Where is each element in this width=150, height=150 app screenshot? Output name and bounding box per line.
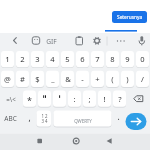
button[interactable] (102, 134, 117, 149)
staticText: * (27, 94, 32, 106)
staticText: . (117, 111, 120, 122)
staticText: 4 (50, 54, 55, 64)
button[interactable]: : (68, 91, 81, 107)
button[interactable]: 9 (121, 51, 134, 67)
button[interactable]: 0 (136, 51, 149, 67)
button[interactable] (72, 34, 85, 47)
button[interactable]: GIF (43, 35, 60, 48)
button[interactable]: 4 (46, 51, 59, 67)
staticText: + (95, 74, 100, 84)
button[interactable] (69, 134, 84, 149)
staticText: ) (126, 74, 129, 84)
staticText: $ (35, 74, 40, 84)
button[interactable] (32, 134, 47, 149)
staticText: 9 (125, 54, 130, 64)
button[interactable]: $ (31, 71, 44, 87)
button[interactable]: 3 (31, 51, 44, 67)
button[interactable]: & (61, 71, 74, 87)
button[interactable]: 1 2 3 4 (37, 110, 52, 126)
button[interactable]: # (16, 71, 29, 87)
button[interactable]: QWERTY (54, 110, 112, 126)
button[interactable]: * (23, 91, 36, 107)
button[interactable]: ) (121, 71, 134, 87)
button[interactable] (53, 91, 66, 107)
button[interactable]: 7 (91, 51, 104, 67)
button[interactable]: 6 (76, 51, 89, 67)
staticText: 0 (140, 54, 145, 64)
button[interactable]: ( (106, 71, 119, 87)
staticText: - (81, 74, 84, 84)
staticText: ABC (4, 114, 17, 123)
button[interactable] (29, 34, 42, 47)
staticText: 6 (80, 54, 85, 64)
button[interactable] (9, 34, 22, 47)
staticText: ( (111, 74, 114, 84)
staticText: / (141, 74, 144, 84)
button[interactable] (38, 91, 51, 107)
staticText: 7 (95, 54, 100, 64)
staticText: # (20, 74, 25, 84)
staticText: ? (118, 94, 122, 104)
button[interactable] (126, 113, 147, 130)
button[interactable]: - (76, 71, 89, 87)
staticText: : (73, 94, 76, 104)
staticText: @ (4, 74, 11, 84)
button[interactable]: / (136, 71, 149, 87)
button[interactable]: ! (98, 91, 111, 107)
staticText: 1 2 3 4 (41, 113, 48, 124)
button[interactable]: 1 (1, 51, 14, 67)
button[interactable] (130, 91, 149, 107)
button[interactable]: + (91, 71, 104, 87)
button[interactable]: 5 (61, 51, 74, 67)
button[interactable]: =\< (1, 91, 20, 107)
staticText: _ (51, 74, 55, 84)
staticText: =\< (6, 95, 16, 103)
staticText: ; (88, 94, 91, 104)
button[interactable]: , (23, 110, 35, 126)
button[interactable]: 2 (16, 51, 29, 67)
staticText: QWERTY (74, 118, 92, 124)
staticText: 5 (65, 54, 70, 64)
staticText: Seterusnya (117, 14, 143, 21)
button[interactable]: ABC (1, 110, 20, 126)
button[interactable]: 8 (106, 51, 119, 67)
button[interactable]: ; (83, 91, 96, 107)
staticText: 8 (110, 54, 115, 64)
button[interactable]: ? (113, 91, 126, 107)
button[interactable]: @ (1, 71, 14, 87)
button[interactable] (90, 34, 103, 47)
button[interactable]: _ (46, 71, 59, 87)
staticText: 2 (20, 54, 25, 64)
staticText: ! (103, 94, 106, 104)
button[interactable]: Seterusnya (112, 11, 147, 23)
staticText: & (65, 74, 71, 84)
staticText: 1 (5, 54, 10, 64)
button[interactable]: . (112, 110, 124, 126)
button[interactable] (114, 34, 127, 47)
staticText: 3 (35, 54, 40, 64)
staticText: GIF (46, 37, 57, 46)
button[interactable] (135, 34, 148, 47)
staticText: , (28, 112, 31, 123)
